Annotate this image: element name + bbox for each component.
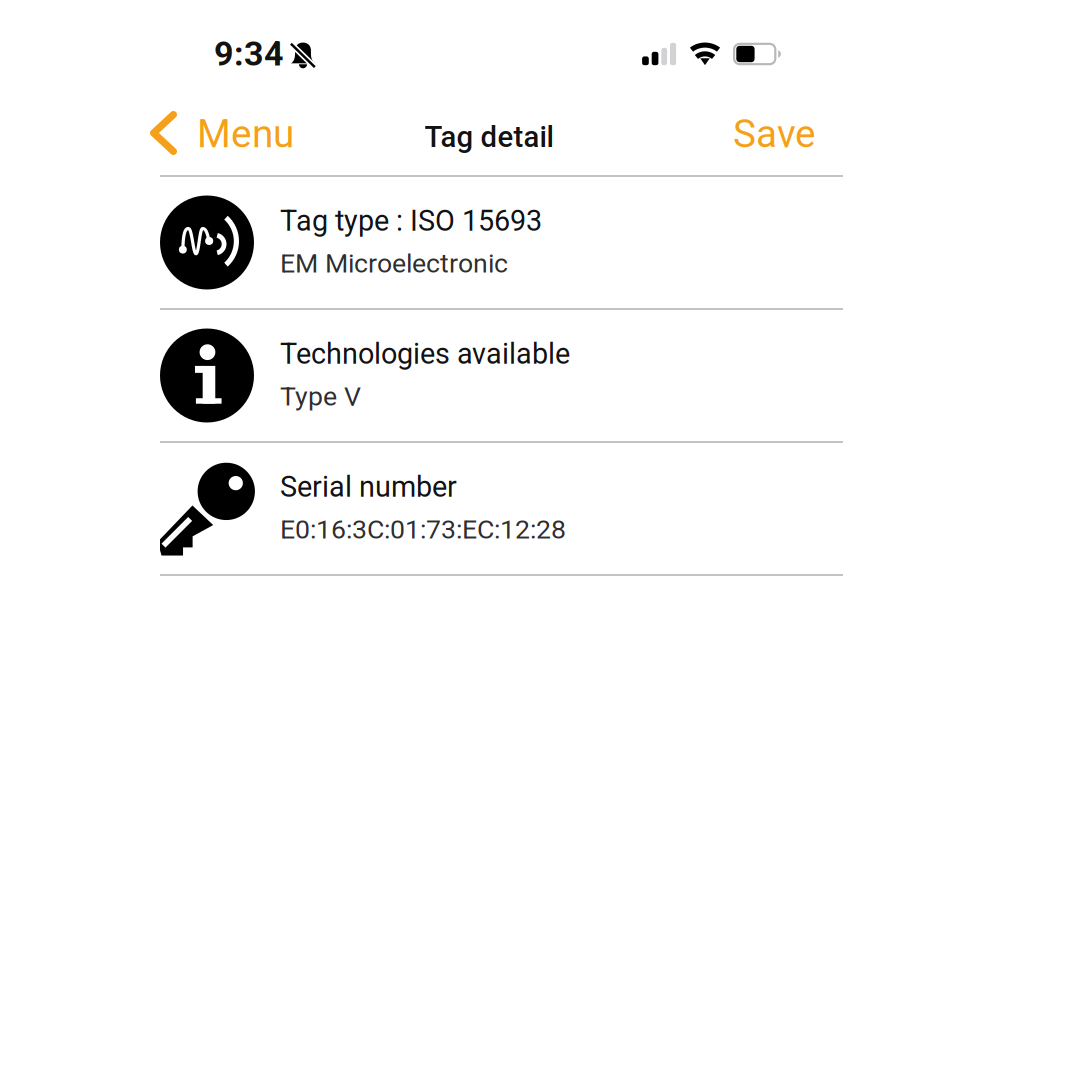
staticText: Type V <box>280 381 361 412</box>
button[interactable]: Save <box>733 111 816 157</box>
staticText: EM Microelectronic <box>280 248 508 279</box>
staticText: Save <box>733 111 816 157</box>
staticText: Technologies available <box>280 337 570 371</box>
staticText: Tag type : ISO 15693 <box>280 204 542 238</box>
staticText: 9:34 <box>214 34 284 74</box>
staticText: Tag detail <box>424 120 553 154</box>
staticText: Serial number <box>280 470 457 504</box>
button[interactable]: Serial number <box>160 443 843 576</box>
button[interactable]: Menu <box>150 111 300 157</box>
button[interactable]: Technologies available <box>160 310 843 443</box>
staticText: E0:16:3C:01:73:EC:12:28 <box>280 514 566 545</box>
staticText: Menu <box>197 111 294 157</box>
button[interactable]: Tag type : ISO 15693 <box>160 177 843 310</box>
